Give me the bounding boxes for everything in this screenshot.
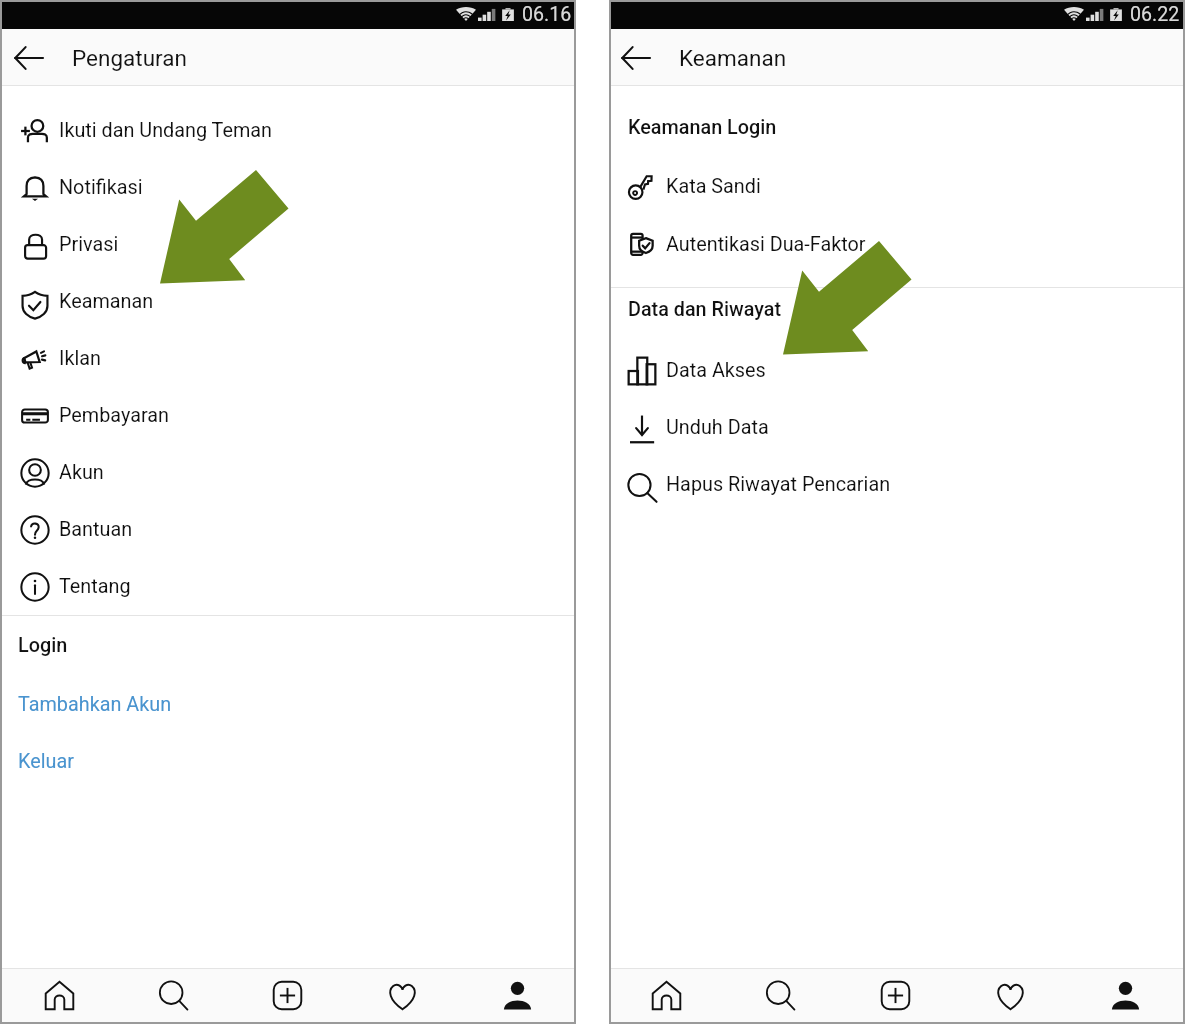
button[interactable]: Iklan	[2, 330, 575, 387]
staticText: Keluar	[18, 750, 74, 773]
staticText: Autentikasi Dua-Faktor	[666, 233, 866, 256]
staticText: Login	[18, 634, 68, 657]
staticText: Tambahkan Akun	[18, 693, 172, 716]
button[interactable]: Hapus Riwayat Pencarian	[609, 456, 1183, 513]
staticText: Hapus Riwayat Pencarian	[666, 473, 891, 496]
button[interactable]: Akun	[2, 444, 575, 501]
button[interactable]: Kembali	[607, 30, 663, 86]
button[interactable]: Privasi	[2, 216, 575, 273]
button[interactable]: Profil	[460, 968, 575, 1023]
button[interactable]: Cari	[116, 968, 230, 1023]
button[interactable]: Autentikasi Dua-Faktor	[609, 215, 1183, 273]
button[interactable]: Unduh Data	[609, 399, 1183, 456]
button[interactable]: Tambahkan Akun	[2, 676, 575, 733]
staticText: Pengaturan	[72, 45, 187, 71]
staticText: Kata Sandi	[666, 175, 761, 198]
button[interactable]: Kembali	[0, 30, 56, 86]
staticText: Ikuti dan Undang Teman	[59, 119, 272, 142]
staticText: Keamanan	[59, 290, 154, 313]
button[interactable]: Keluar	[2, 733, 575, 790]
button[interactable]: Tentang	[2, 558, 575, 615]
button[interactable]: Aktivitas	[953, 968, 1068, 1023]
staticText: Bantuan	[59, 518, 133, 541]
button[interactable]: Bantuan	[2, 501, 575, 558]
button[interactable]: Aktivitas	[345, 968, 460, 1023]
button[interactable]: Notifikasi	[2, 159, 575, 216]
staticText: Notifikasi	[59, 176, 143, 199]
staticText: Unduh Data	[666, 416, 769, 439]
staticText: Pembayaran	[59, 404, 169, 427]
staticText: Tentang	[59, 575, 131, 598]
staticText: Keamanan Login	[628, 116, 777, 139]
button[interactable]: Pembayaran	[2, 387, 575, 444]
button[interactable]: Ikuti dan Undang Teman	[2, 102, 575, 159]
button[interactable]: Cari	[723, 968, 838, 1023]
staticText: 06.16	[522, 3, 572, 26]
button[interactable]: Data Akses	[609, 342, 1183, 399]
staticText: Data dan Riwayat	[628, 298, 782, 321]
button[interactable]: Kata Sandi	[609, 157, 1183, 215]
staticText: 06.22	[1130, 3, 1180, 26]
button[interactable]: Buat	[838, 968, 953, 1023]
staticText: Data Akses	[666, 359, 766, 382]
staticText: Akun	[59, 461, 104, 484]
staticText: Keamanan	[679, 45, 787, 71]
button[interactable]: Profil	[1068, 968, 1183, 1023]
button[interactable]: Beranda	[609, 968, 723, 1023]
staticText: Iklan	[59, 347, 101, 370]
button[interactable]: Beranda	[2, 968, 116, 1023]
button[interactable]: Buat	[230, 968, 345, 1023]
button[interactable]: Keamanan	[2, 273, 575, 330]
staticText: Privasi	[59, 233, 119, 256]
